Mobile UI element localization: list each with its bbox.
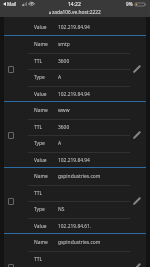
button[interactable]: Edit record [129, 193, 145, 209]
staticText: 9% [126, 1, 133, 7]
button[interactable]: Type [4, 135, 146, 151]
button[interactable]: Select record [0, 193, 21, 209]
staticText: A [58, 74, 62, 81]
staticText: A [58, 140, 62, 147]
button[interactable]: Name [4, 36, 146, 52]
button[interactable]: TTL [4, 251, 146, 267]
staticText: TTL [34, 190, 43, 197]
staticText: Type [34, 140, 45, 147]
staticText: Type [34, 206, 45, 213]
staticText: smtp [58, 41, 70, 48]
staticText: zada106.ve.host:2222 [52, 9, 101, 16]
button[interactable]: Edit record [129, 259, 145, 267]
staticText: 3600 [58, 58, 70, 65]
button[interactable]: Value [4, 218, 146, 234]
button[interactable]: Name [4, 234, 146, 250]
staticText: Name [34, 239, 48, 246]
staticText: 14:22 [68, 1, 81, 8]
staticText: gspindustries.com [58, 239, 101, 246]
staticText: 102.219.84.61. [58, 223, 92, 230]
button[interactable]: Name [4, 168, 146, 184]
button[interactable]: Edit record [129, 61, 145, 77]
staticText: gspindustries.com [58, 173, 101, 180]
staticText: 102.219.84.94 [58, 157, 90, 164]
button[interactable]: Name [4, 102, 146, 118]
staticText: Name [34, 107, 48, 114]
button[interactable]: TTL [4, 53, 146, 69]
staticText: TTL [34, 124, 43, 131]
staticText: 102.219.84.94 [58, 24, 90, 31]
staticText: Type [34, 74, 45, 81]
button[interactable]: Select record [0, 61, 21, 77]
staticText: TTL [34, 256, 43, 263]
staticText: TTL [34, 58, 43, 65]
staticText: Value [34, 24, 47, 31]
staticText: Name [34, 41, 48, 48]
button[interactable]: Type [4, 69, 146, 85]
button[interactable]: Select record [0, 127, 21, 143]
staticText: Value [34, 223, 47, 230]
staticText: NS [58, 206, 65, 213]
button[interactable]: Value [4, 86, 146, 102]
button[interactable]: Value [4, 152, 146, 168]
button[interactable]: Type [4, 201, 146, 217]
staticText: 3600 [58, 124, 70, 131]
button[interactable]: TTL [4, 119, 146, 135]
button[interactable]: Value [4, 19, 146, 35]
staticText: Value [34, 157, 47, 164]
button[interactable]: TTL [4, 185, 146, 201]
button[interactable]: Select record [0, 259, 21, 267]
button[interactable]: Edit record [129, 127, 145, 143]
staticText: 102.219.84.94 [58, 91, 90, 98]
staticText: Name [34, 173, 48, 180]
staticText: Value [34, 91, 47, 98]
staticText: www [58, 107, 70, 114]
staticText: Mail [7, 1, 17, 7]
